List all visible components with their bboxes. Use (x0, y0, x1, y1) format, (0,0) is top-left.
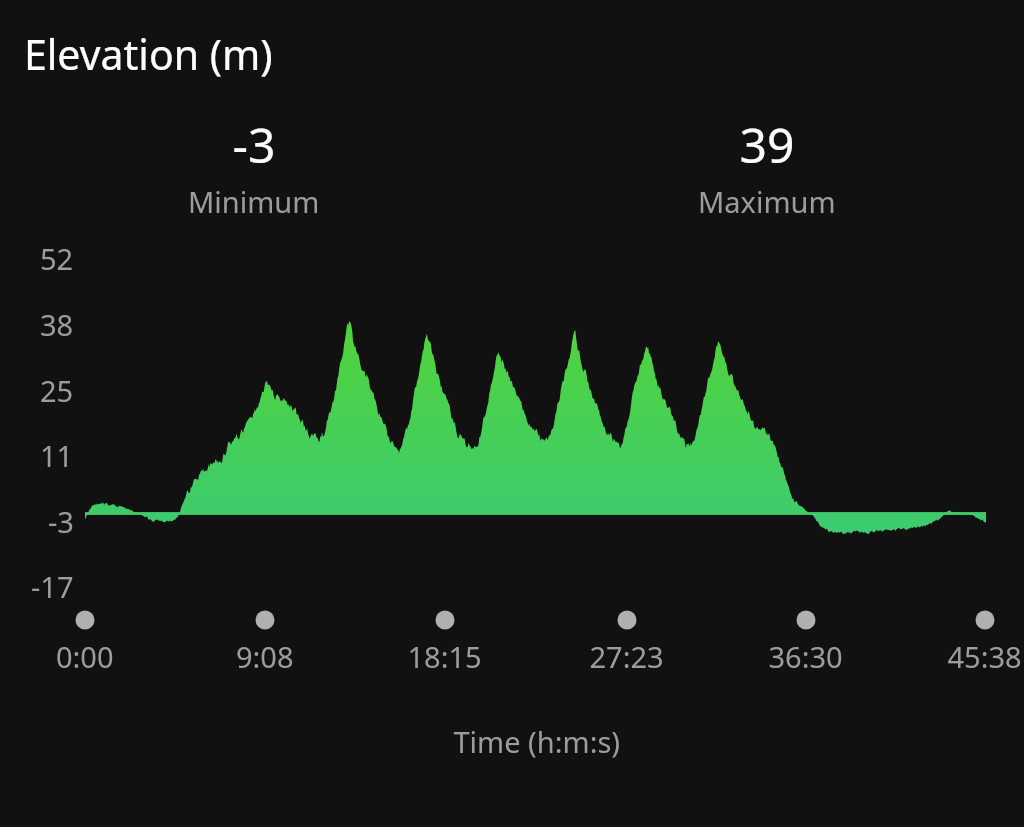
button[interactable]: Elevation chart, minimum -3 metres, maxi… (0, 0, 1024, 827)
